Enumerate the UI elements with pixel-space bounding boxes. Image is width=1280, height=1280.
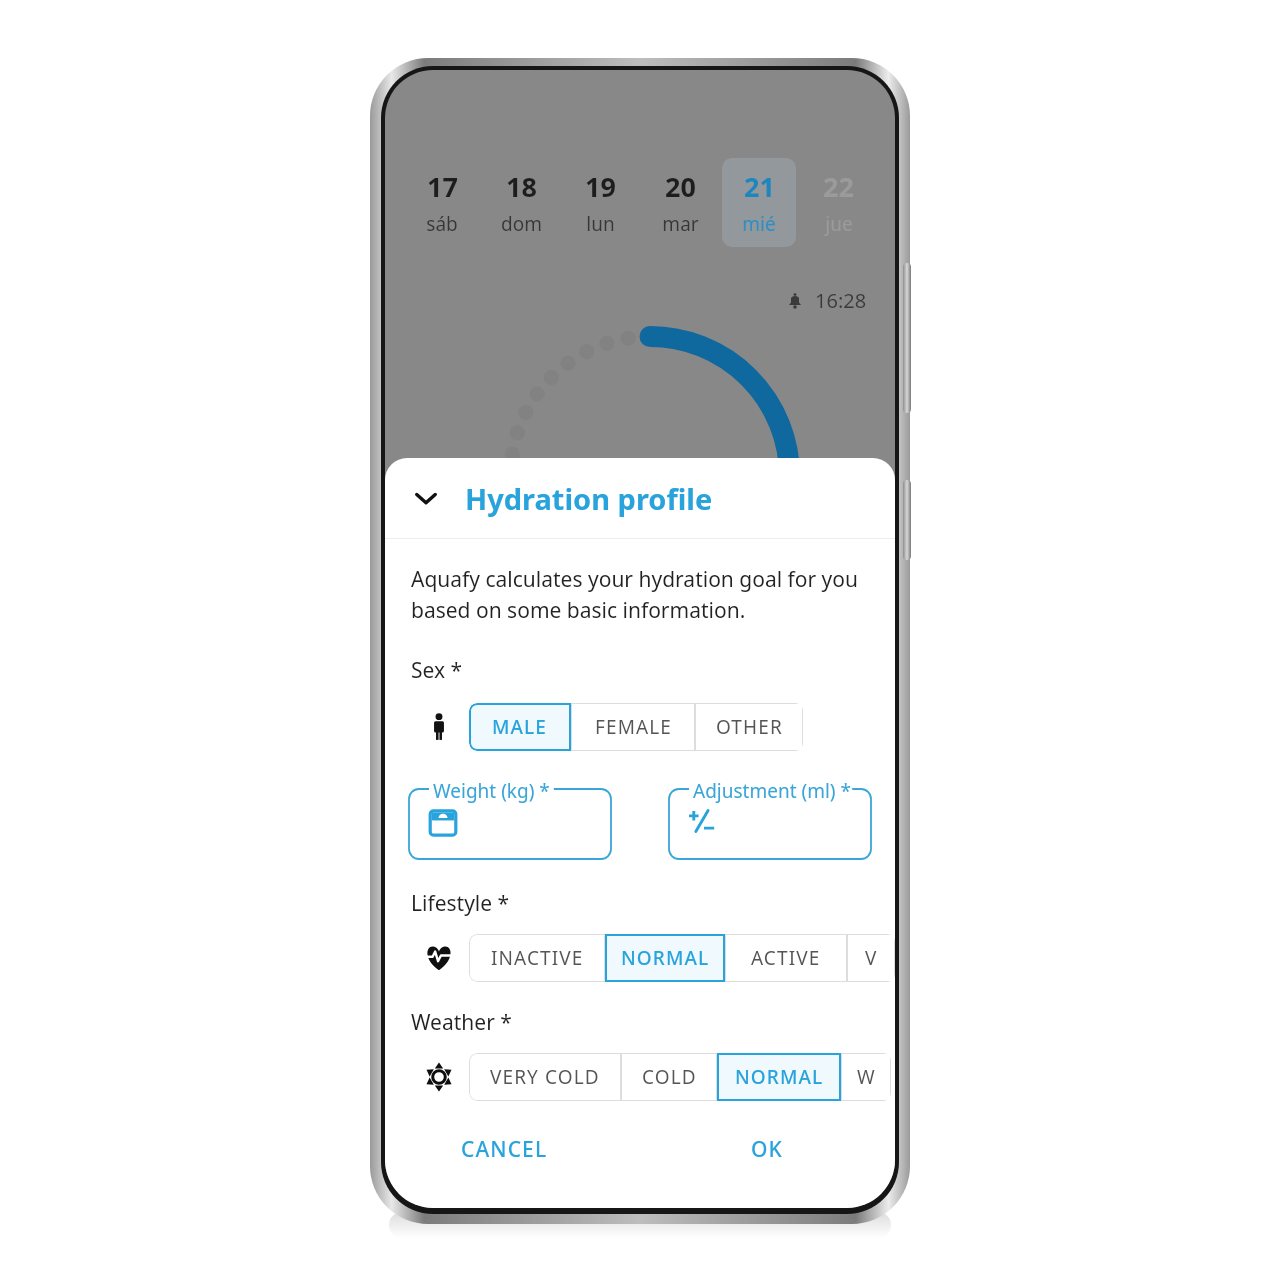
button[interactable]: 21 xyxy=(722,158,796,247)
staticText: Hydration profile xyxy=(465,479,713,518)
button[interactable]: ACTIVE xyxy=(725,934,847,982)
button[interactable]: INACTIVE xyxy=(469,934,605,982)
staticText: MALE xyxy=(492,714,548,740)
staticText: jue xyxy=(825,211,853,237)
button[interactable]: COLD xyxy=(621,1053,717,1101)
staticText: mar xyxy=(662,211,699,237)
button[interactable]: 19 xyxy=(563,158,637,247)
other: Collapse xyxy=(409,481,443,515)
staticText: Weather * xyxy=(411,1008,512,1037)
staticText: 20 xyxy=(665,168,696,205)
staticText: Aquafy calculates your hydration goal fo… xyxy=(411,565,859,624)
staticText: dom xyxy=(501,211,542,237)
staticText: Lifestyle * xyxy=(411,889,510,918)
button[interactable]: NORMAL xyxy=(717,1053,841,1101)
staticText: 19 xyxy=(585,168,616,205)
button[interactable]: OK xyxy=(737,1125,797,1174)
staticText: CANCEL xyxy=(461,1135,548,1164)
button[interactable]: Collapse xyxy=(385,458,895,538)
button[interactable]: 17 xyxy=(405,158,479,247)
button[interactable]: W xyxy=(841,1053,891,1101)
staticText: W xyxy=(857,1064,876,1090)
staticText: V xyxy=(865,945,878,971)
button[interactable]: NORMAL xyxy=(605,934,725,982)
staticText: NORMAL xyxy=(735,1064,824,1090)
staticText: OTHER xyxy=(716,714,783,740)
staticText: sáb xyxy=(426,211,458,237)
staticText: lun xyxy=(586,211,615,237)
staticText: 17 xyxy=(427,168,458,205)
staticText: 22 xyxy=(823,168,854,205)
staticText: VERY COLD xyxy=(490,1064,600,1090)
button[interactable]: CANCEL xyxy=(447,1125,562,1174)
staticText: COLD xyxy=(642,1064,697,1090)
staticText: 0,74 L xyxy=(596,450,704,502)
staticText: 18 xyxy=(506,168,537,205)
button[interactable]: Weight (kg) * xyxy=(409,781,611,859)
staticText: INACTIVE xyxy=(491,945,584,971)
button[interactable]: MALE xyxy=(469,703,571,751)
staticText: 16:28 xyxy=(815,287,867,314)
button[interactable]: Adjustment (ml) * xyxy=(669,781,871,859)
button[interactable]: 22 xyxy=(801,158,875,247)
staticText: mié xyxy=(742,211,776,237)
staticText: Adjustment (ml) * xyxy=(693,778,851,804)
staticText: Sex * xyxy=(411,656,463,685)
staticText: FEMALE xyxy=(595,714,672,740)
button[interactable]: 20 xyxy=(643,158,717,247)
staticText: ACTIVE xyxy=(751,945,821,971)
staticText: Weight (kg) * xyxy=(433,778,550,804)
button[interactable]: V xyxy=(847,934,895,982)
button[interactable]: 18 xyxy=(484,158,558,247)
staticText: NORMAL xyxy=(621,945,710,971)
staticText: 21 xyxy=(744,168,775,205)
button[interactable]: VERY COLD xyxy=(469,1053,621,1101)
button[interactable]: FEMALE xyxy=(571,703,695,751)
staticText: OK xyxy=(751,1135,783,1164)
button[interactable]: OTHER xyxy=(695,703,803,751)
